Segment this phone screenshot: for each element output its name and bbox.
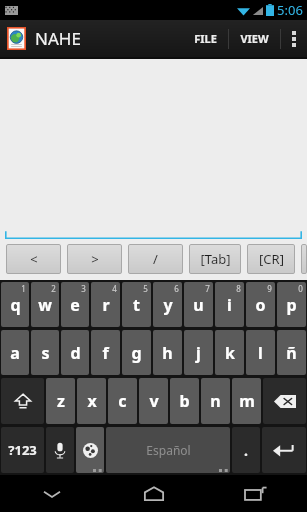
staticText: / [153,250,158,268]
button[interactable]: g [122,330,151,375]
button[interactable]: ñ [277,330,306,375]
staticText: c [118,390,127,412]
staticText: u [193,294,204,316]
staticText: w [38,294,52,316]
button[interactable]: x [77,378,106,424]
staticText: 7 [205,283,210,294]
button[interactable]: Hide keyboard [0,475,103,512]
button[interactable]: j [184,330,213,375]
staticText: e [70,294,80,316]
button[interactable]: . [232,427,260,473]
staticText: . [244,441,248,460]
button[interactable]: p [277,282,306,327]
staticText: i [227,294,232,316]
staticText: n [210,390,221,412]
button[interactable]: z [46,378,75,424]
staticText: b [179,390,190,412]
staticText: y [163,294,173,316]
staticText: m [239,390,255,412]
staticText: 1 [21,283,26,294]
staticText: v [149,390,159,412]
staticText: x [87,390,97,412]
staticText: [CR] [259,250,284,268]
button[interactable]: Change language [76,427,104,473]
button[interactable]: Home [103,475,205,512]
staticText: s [41,342,50,364]
staticText: FILE [194,31,217,46]
button[interactable]: q [1,282,29,327]
staticText: o [255,294,266,316]
staticText: 2 [51,283,56,294]
button[interactable]: / [128,244,183,274]
staticText: 0 [298,283,303,294]
button[interactable]: VIEW [229,20,280,57]
button[interactable]: t [122,282,151,327]
staticText: j [196,342,201,364]
staticText: z [57,390,65,412]
button[interactable]: o [246,282,275,327]
staticText: ñ [286,342,297,364]
button[interactable]: c [108,378,137,424]
staticText: a [10,342,20,364]
staticText: 5 [143,283,148,294]
button[interactable]: u [184,282,213,327]
button[interactable]: ?123 [1,427,44,473]
button[interactable]: FILE [183,20,228,57]
button[interactable]: Backspace [263,378,306,424]
button[interactable] [301,244,307,274]
staticText: h [162,342,173,364]
staticText: r [102,294,110,316]
button[interactable]: m [232,378,261,424]
staticText: k [225,342,235,364]
button[interactable]: h [153,330,182,375]
button[interactable]: Recent apps [205,475,307,512]
staticText: ?123 [8,441,37,459]
button[interactable]: v [139,378,168,424]
button[interactable]: Enter [262,427,306,473]
staticText: NAHE [35,27,81,50]
button[interactable]: More options [281,20,307,57]
button[interactable]: b [170,378,199,424]
staticText: f [102,342,109,364]
staticText: 8 [236,283,241,294]
staticText: 4 [112,283,117,294]
button[interactable]: n [201,378,230,424]
button[interactable]: e [61,282,89,327]
staticText: < [30,250,38,268]
staticText: Español [146,442,191,458]
button[interactable]: a [1,330,29,375]
staticText: 3 [81,283,86,294]
button[interactable]: l [246,330,275,375]
staticText: l [258,342,263,364]
button[interactable]: Shift [1,378,44,424]
staticText: t [133,294,140,316]
staticText: [Tab] [200,250,231,268]
button[interactable]: [CR] [247,244,295,274]
button[interactable] [5,230,302,239]
button[interactable]: w [31,282,59,327]
button[interactable]: i [215,282,244,327]
staticText: q [10,294,21,316]
button[interactable]: r [91,282,120,327]
button[interactable]: Voice input [46,427,74,473]
staticText: 6 [174,283,179,294]
button[interactable]: s [31,330,59,375]
button[interactable]: f [91,330,120,375]
staticText: d [70,342,81,364]
button[interactable]: k [215,330,244,375]
staticText: VIEW [240,31,269,46]
staticText: 9 [267,283,272,294]
button[interactable]: > [67,244,122,274]
button[interactable]: d [61,330,89,375]
button[interactable]: < [6,244,61,274]
staticText: > [91,250,99,268]
button[interactable]: y [153,282,182,327]
staticText: g [131,342,142,364]
button[interactable]: [Tab] [189,244,241,274]
staticText: 5:06 [277,1,303,19]
button[interactable]: Space [106,427,230,473]
staticText: p [286,294,297,316]
